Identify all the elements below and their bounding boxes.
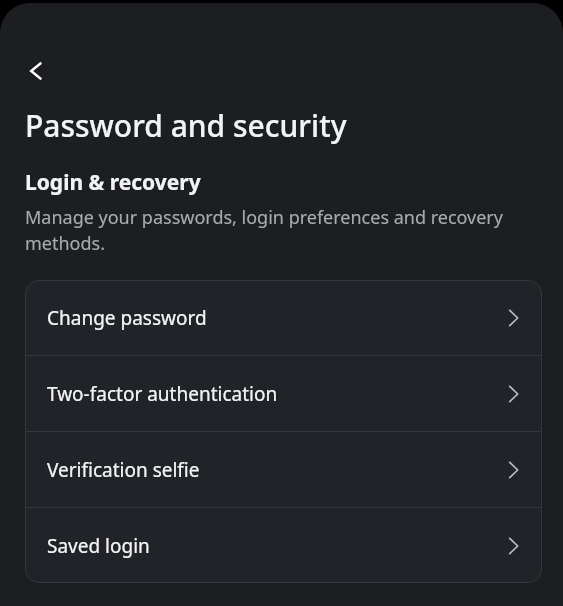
staticText: Verification selfie xyxy=(47,457,508,483)
staticText: Saved login xyxy=(47,533,508,559)
staticText: Manage your passwords, login preferences… xyxy=(25,205,523,256)
staticText: Two-factor authentication xyxy=(47,381,508,407)
button[interactable]: Verification selfie xyxy=(25,432,542,507)
button[interactable]: Saved login xyxy=(25,508,542,583)
button[interactable]: Back xyxy=(14,49,58,93)
button[interactable]: Two-factor authentication xyxy=(25,356,542,431)
button[interactable]: Change password xyxy=(25,280,542,355)
staticText: Change password xyxy=(47,305,508,331)
staticText: Login & recovery xyxy=(25,168,201,197)
staticText: Password and security xyxy=(25,105,347,146)
